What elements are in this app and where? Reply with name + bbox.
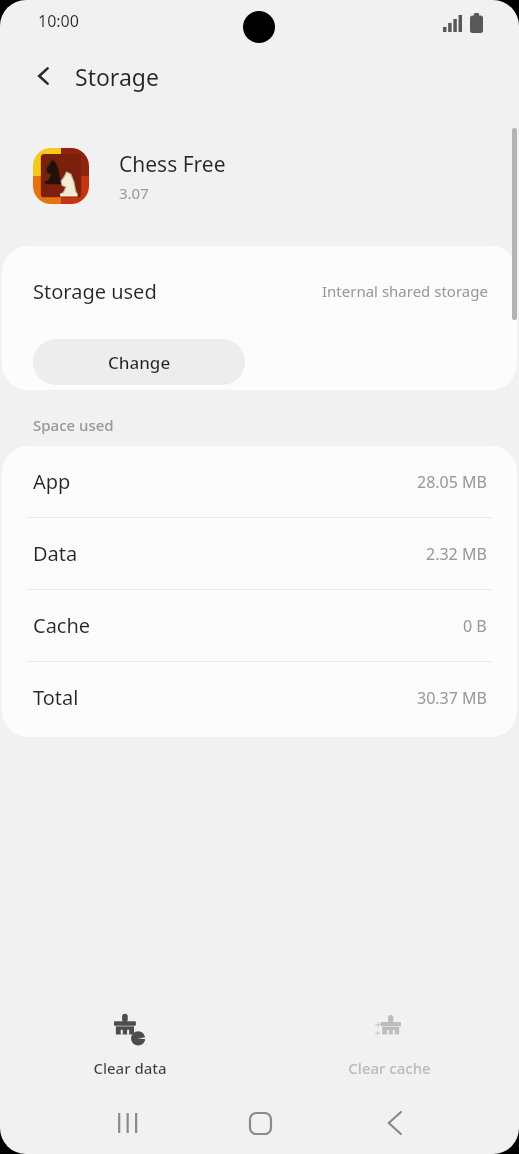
button[interactable]: Clear cache [259, 1000, 519, 1092]
staticText: Clear data [93, 1058, 167, 1078]
button[interactable]: Recent apps [78, 1092, 178, 1154]
staticText: 28.05 MB [417, 471, 487, 493]
staticText: Storage [75, 61, 159, 92]
button[interactable]: Chess Free [0, 134, 519, 218]
staticText: Cache [33, 612, 91, 639]
button[interactable]: App [2, 446, 517, 517]
button[interactable]: Total [2, 662, 517, 733]
staticText: 30.37 MB [417, 687, 487, 709]
staticText: Storage used [33, 278, 157, 305]
staticText: 0 B [463, 615, 487, 637]
staticText: App [33, 468, 71, 495]
staticText: 10:00 [38, 10, 79, 32]
staticText: Space used [33, 415, 114, 435]
button[interactable]: Clear data [0, 1000, 259, 1092]
staticText: Clear cache [348, 1058, 431, 1078]
button[interactable]: Storage used [2, 246, 517, 336]
button[interactable]: Cache [2, 590, 517, 661]
button[interactable]: Data [2, 518, 517, 589]
staticText: Chess Free [119, 150, 226, 179]
button[interactable]: Back [345, 1092, 445, 1154]
button[interactable]: Home [210, 1092, 310, 1154]
staticText: 3.07 [119, 183, 149, 203]
staticText: Total [33, 684, 79, 711]
staticText: Change [108, 351, 171, 374]
button[interactable]: Change [33, 339, 245, 385]
staticText: Internal shared storage [322, 281, 488, 301]
button[interactable]: Back [20, 52, 68, 100]
staticText: Data [33, 540, 78, 567]
staticText: 2.32 MB [426, 543, 487, 565]
